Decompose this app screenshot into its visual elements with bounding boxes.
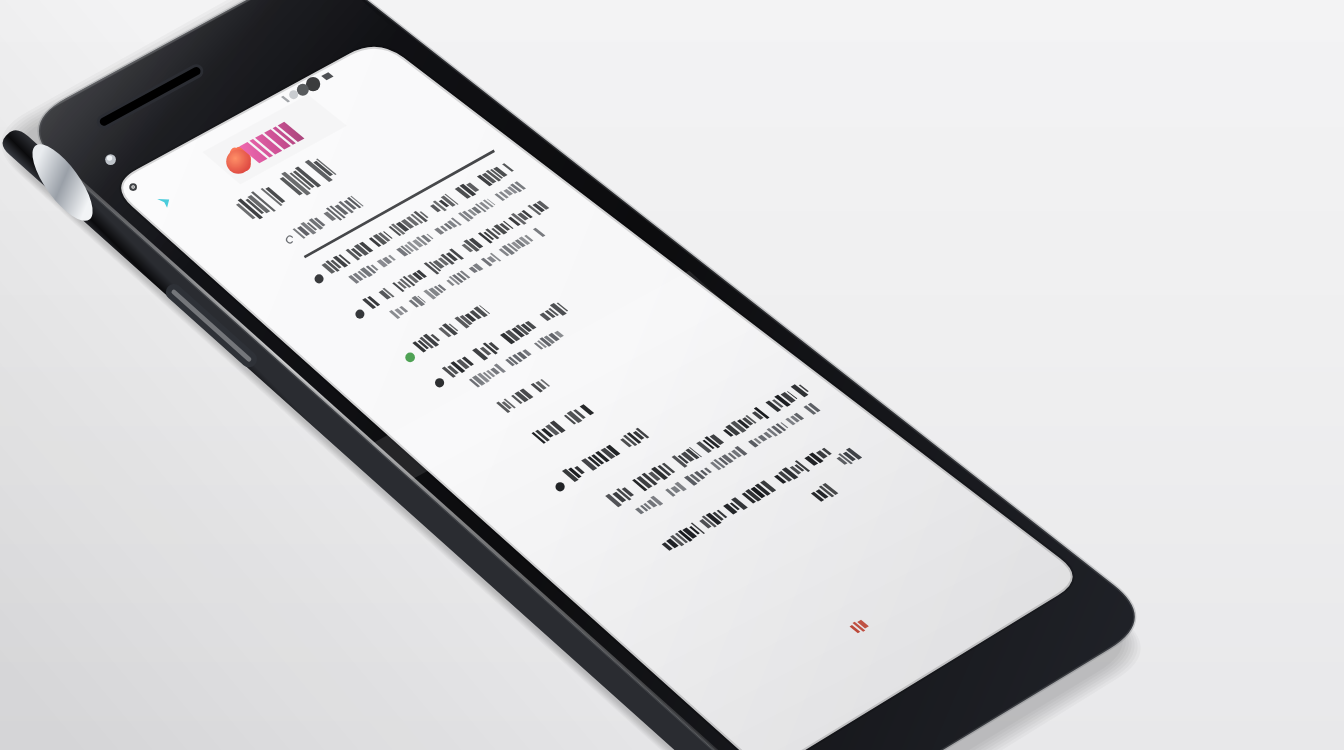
button[interactable]: Phone showing app information screen	[0, 0, 1344, 750]
